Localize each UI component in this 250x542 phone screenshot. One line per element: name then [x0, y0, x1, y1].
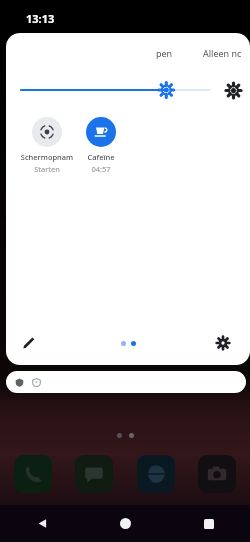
button[interactable]: App — [14, 455, 52, 493]
button[interactable]: Alleen nc — [197, 44, 248, 62]
button[interactable]: Cafeïne — [74, 115, 128, 176]
button[interactable]: Schermopname — [20, 115, 74, 176]
staticText: pen — [156, 47, 173, 59]
staticText: Alleen nc — [203, 47, 242, 59]
button[interactable]: Auto brightness — [216, 75, 250, 105]
button[interactable]: Home — [84, 505, 167, 542]
button[interactable]: Recents — [167, 505, 250, 542]
staticText: Cafeïne — [87, 152, 115, 162]
button[interactable]: App — [198, 455, 236, 493]
button[interactable]: Edit tiles — [14, 328, 44, 358]
button[interactable]: Back — [0, 505, 84, 542]
button[interactable] — [6, 371, 246, 393]
staticText: Schermopname — [20, 152, 74, 162]
staticText: Starten — [34, 164, 60, 174]
button[interactable]: App — [137, 455, 175, 493]
button[interactable]: Settings — [208, 328, 238, 358]
button[interactable]: Brightness — [21, 77, 216, 103]
staticText: 13:13 — [26, 11, 55, 26]
staticText: 04:57 — [91, 164, 111, 174]
button[interactable]: App — [75, 455, 113, 493]
button[interactable]: pen — [150, 44, 179, 62]
